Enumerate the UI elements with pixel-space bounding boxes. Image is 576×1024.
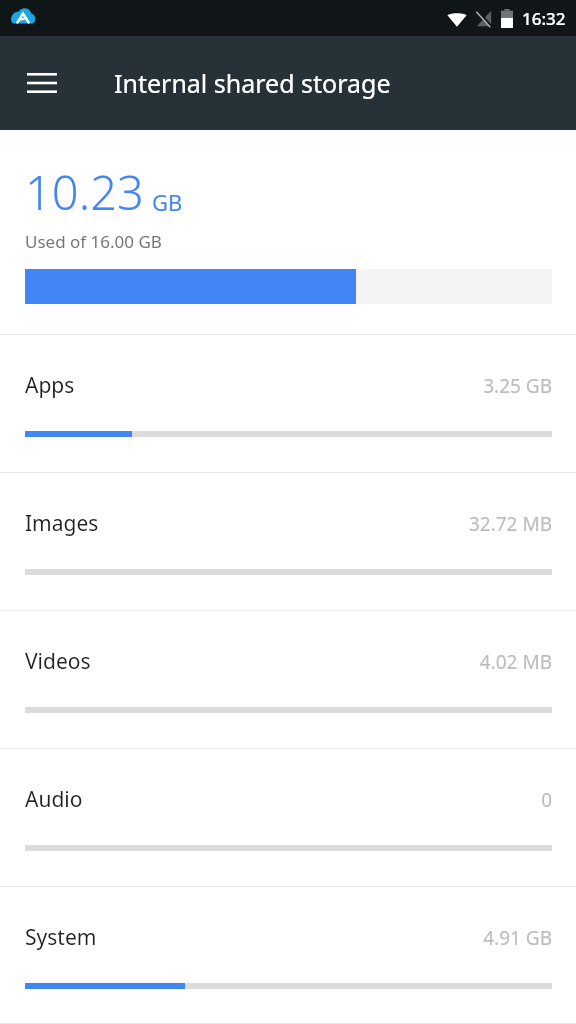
staticText: 4.91 GB [483, 925, 552, 951]
staticText: 16:32 [522, 7, 566, 30]
staticText: Audio [25, 785, 83, 814]
staticText: GB [152, 187, 183, 217]
staticText: Internal shared storage [114, 66, 391, 100]
staticText: 10.23 [25, 160, 144, 224]
staticText: Apps [25, 371, 75, 400]
staticText: 32.72 MB [468, 511, 552, 537]
staticText: 3.25 GB [483, 373, 552, 399]
staticText: Videos [25, 647, 91, 676]
staticText: System [25, 923, 97, 952]
button[interactable]: Videos [0, 611, 576, 749]
staticText: 4.02 MB [479, 649, 552, 675]
staticText: 0 [541, 787, 552, 813]
staticText: Used of 16.00 GB [25, 230, 162, 253]
staticText: Images [25, 509, 99, 538]
button[interactable]: Images [0, 473, 576, 611]
button[interactable]: Apps [0, 335, 576, 473]
button[interactable]: Open navigation menu [14, 55, 70, 111]
button[interactable]: System [0, 887, 576, 1024]
button[interactable]: Audio [0, 749, 576, 887]
